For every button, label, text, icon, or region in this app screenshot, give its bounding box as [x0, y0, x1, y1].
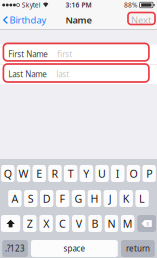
button[interactable]: space — [31, 240, 118, 257]
button[interactable]: B — [88, 215, 102, 232]
button[interactable]: First Name — [0, 44, 157, 64]
button[interactable]: Q — [1, 165, 14, 182]
staticText: x — [146, 219, 150, 228]
staticText: Next — [131, 14, 151, 26]
staticText: Y — [83, 166, 89, 181]
staticText: Skytel — [22, 1, 41, 9]
button[interactable]: N — [105, 215, 118, 232]
button[interactable]: U — [95, 165, 109, 182]
staticText: I — [116, 166, 120, 181]
button[interactable]: A — [8, 190, 22, 207]
staticText: first — [57, 49, 72, 59]
staticText: N — [107, 216, 115, 231]
button[interactable]: F — [56, 190, 69, 207]
staticText: B — [92, 216, 99, 231]
button[interactable]: R — [48, 165, 62, 182]
staticText: X — [43, 216, 49, 231]
button[interactable]: G — [72, 190, 85, 207]
button[interactable]: M — [121, 215, 134, 232]
staticText: E — [36, 166, 42, 181]
staticText: D — [43, 191, 51, 206]
staticText: 88% — [124, 1, 138, 9]
button[interactable]: C — [56, 215, 69, 232]
button[interactable]: V — [72, 215, 85, 232]
staticText: First Name — [8, 49, 48, 59]
staticText: V — [76, 216, 82, 231]
staticText: T — [68, 166, 74, 181]
staticText: 3:16 PM — [65, 1, 91, 9]
button[interactable]: Shift — [1, 215, 20, 232]
button[interactable]: Last Name — [0, 64, 157, 84]
button[interactable]: L — [135, 190, 149, 207]
button[interactable]: T — [64, 165, 77, 182]
button[interactable]: Y — [80, 165, 93, 182]
button[interactable]: Next — [131, 10, 157, 30]
button[interactable]: I — [111, 165, 124, 182]
staticText: Last Name — [8, 69, 47, 79]
staticText: last — [56, 69, 69, 79]
staticText: Name — [65, 14, 91, 26]
staticText: Birthday — [10, 14, 47, 26]
staticText: return — [126, 243, 150, 254]
button[interactable]: O — [127, 165, 140, 182]
button[interactable]: Z — [23, 215, 36, 232]
staticText: J — [109, 191, 112, 206]
button[interactable]: J — [104, 190, 117, 207]
staticText: Z — [27, 216, 33, 231]
staticText: L — [139, 191, 145, 206]
button[interactable]: E — [32, 165, 46, 182]
staticText: G — [74, 191, 82, 206]
staticText: S — [28, 191, 34, 206]
button[interactable]: Birthday — [0, 10, 47, 30]
button[interactable]: D — [40, 190, 53, 207]
staticText: F — [60, 191, 66, 206]
staticText: P — [146, 166, 152, 181]
button[interactable]: Delete — [137, 215, 156, 232]
staticText: H — [90, 191, 98, 206]
button[interactable]: P — [142, 165, 156, 182]
button[interactable]: .?123 — [2, 240, 28, 257]
button[interactable]: W — [17, 165, 30, 182]
button[interactable]: X — [39, 215, 53, 232]
staticText: R — [51, 166, 58, 181]
staticText: A — [11, 191, 18, 206]
staticText: Q — [4, 166, 12, 181]
staticText: .?123 — [5, 243, 25, 254]
staticText: O — [129, 166, 137, 181]
staticText: W — [18, 166, 28, 181]
staticText: U — [98, 166, 106, 181]
button[interactable]: H — [88, 190, 101, 207]
staticText: M — [123, 216, 133, 231]
button[interactable]: return — [121, 240, 155, 257]
button[interactable]: S — [24, 190, 37, 207]
staticText: space — [63, 243, 85, 254]
staticText: C — [59, 216, 66, 231]
button[interactable]: K — [119, 190, 133, 207]
staticText: K — [123, 191, 130, 206]
